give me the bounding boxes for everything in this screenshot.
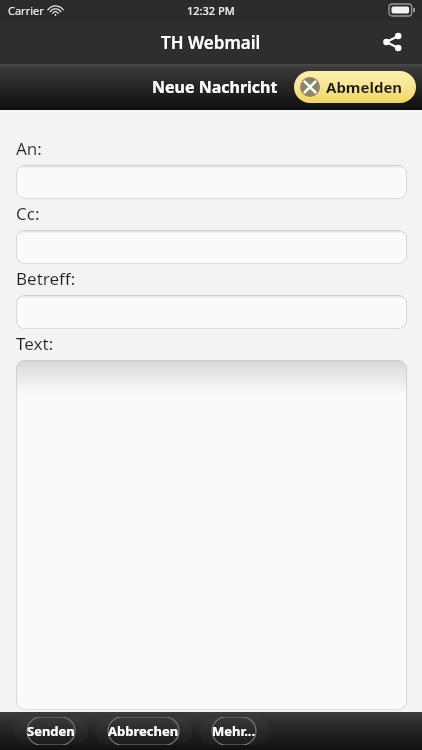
staticText: Senden	[27, 722, 75, 740]
button[interactable]	[16, 360, 407, 710]
staticText: Mehr...	[212, 722, 256, 740]
staticText: TH Webmail	[161, 31, 261, 54]
staticText: 12:32 PM	[187, 3, 235, 18]
button[interactable]: Abmelden	[294, 71, 416, 103]
button[interactable]: Senden	[14, 717, 88, 745]
button[interactable]: Share	[372, 22, 412, 62]
staticText: Abbrechen	[108, 722, 179, 740]
button[interactable]	[16, 230, 407, 264]
staticText: Text:	[16, 332, 54, 355]
staticText: Abmelden	[326, 77, 403, 97]
staticText: An:	[16, 137, 42, 160]
staticText: Carrier	[8, 3, 44, 18]
staticText: Neue Nachricht	[152, 76, 278, 98]
button[interactable]	[16, 295, 407, 329]
button[interactable]	[16, 165, 407, 199]
button[interactable]: Abbrechen	[95, 717, 192, 745]
staticText: Cc:	[16, 202, 40, 225]
staticText: Betreff:	[16, 267, 76, 290]
button[interactable]: Mehr...	[199, 717, 269, 745]
